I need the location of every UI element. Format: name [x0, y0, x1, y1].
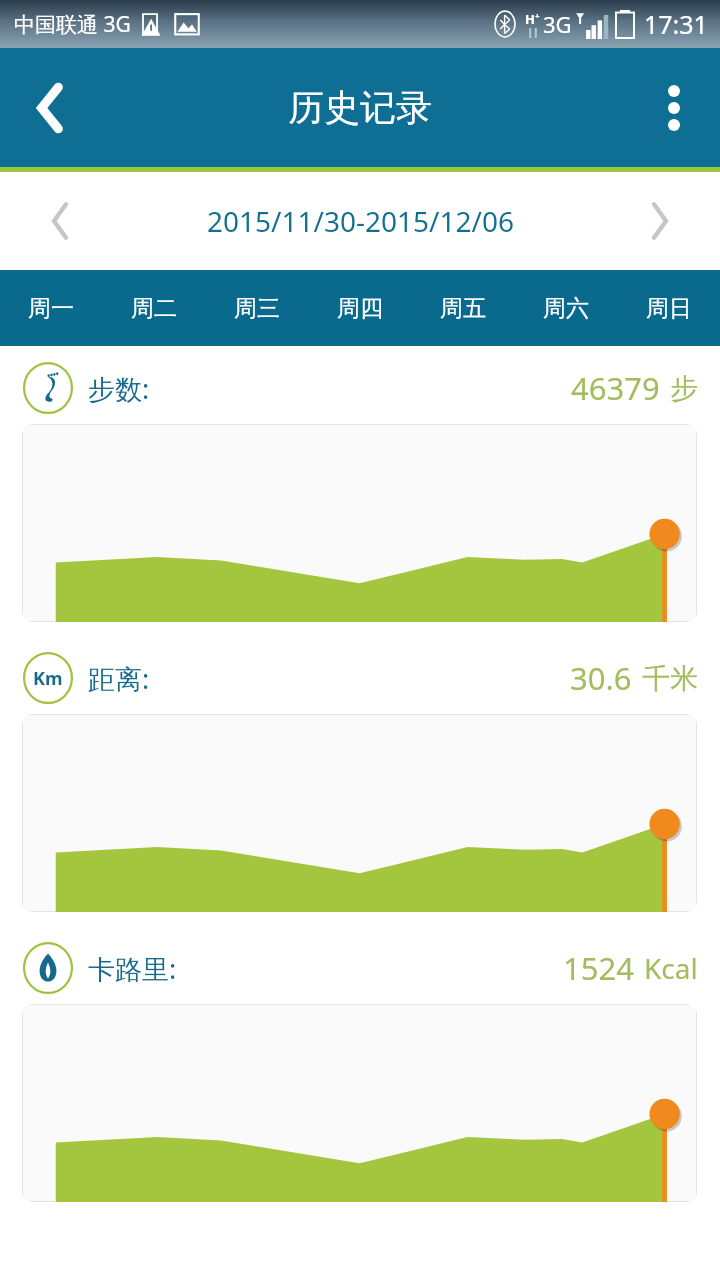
button[interactable]: Back [0, 48, 100, 167]
staticText: 卡路里: [88, 950, 177, 987]
staticText: 周六 [543, 294, 589, 323]
button[interactable]: 周四 [308, 270, 411, 346]
button[interactable]: More options [628, 48, 720, 167]
staticText: 2015/11/30-2015/12/06 [207, 202, 514, 240]
button[interactable] [22, 1004, 697, 1202]
staticText: 周三 [234, 294, 280, 323]
button[interactable]: Km [22, 650, 698, 706]
button[interactable]: Previous week [0, 172, 120, 270]
staticText: H⁺ [525, 10, 540, 28]
staticText: Kcal [644, 949, 698, 987]
staticText: 步数: [88, 370, 150, 407]
button[interactable] [22, 424, 697, 622]
staticText: 步 [670, 371, 698, 406]
button[interactable] [22, 714, 697, 912]
staticText: Km [33, 666, 63, 691]
staticText: 17:31 [644, 7, 708, 41]
button[interactable]: Next week [600, 172, 720, 270]
staticText: 千米 [642, 661, 698, 696]
button[interactable]: 周五 [411, 270, 514, 346]
button[interactable]: 周三 [205, 270, 308, 346]
staticText: 周日 [646, 294, 692, 323]
button[interactable]: 周六 [514, 270, 617, 346]
staticText: 3G [543, 9, 572, 39]
button[interactable]: 周日 [617, 270, 720, 346]
button[interactable]: 卡路里: [22, 940, 698, 996]
staticText: 距离: [88, 660, 150, 697]
staticText: 30.6 [570, 657, 632, 699]
staticText: 1524 [563, 947, 634, 989]
staticText: 周五 [440, 294, 486, 323]
staticText: 周四 [337, 294, 383, 323]
staticText: 周二 [131, 294, 177, 323]
staticText: 46379 [571, 367, 660, 409]
staticText: 周一 [28, 294, 74, 323]
button[interactable]: 周二 [102, 270, 205, 346]
staticText: 历史记录 [288, 85, 432, 130]
button[interactable]: 步数: [22, 360, 698, 416]
staticText: 中国联通 3G [14, 10, 131, 39]
button[interactable]: 周一 [0, 270, 102, 346]
